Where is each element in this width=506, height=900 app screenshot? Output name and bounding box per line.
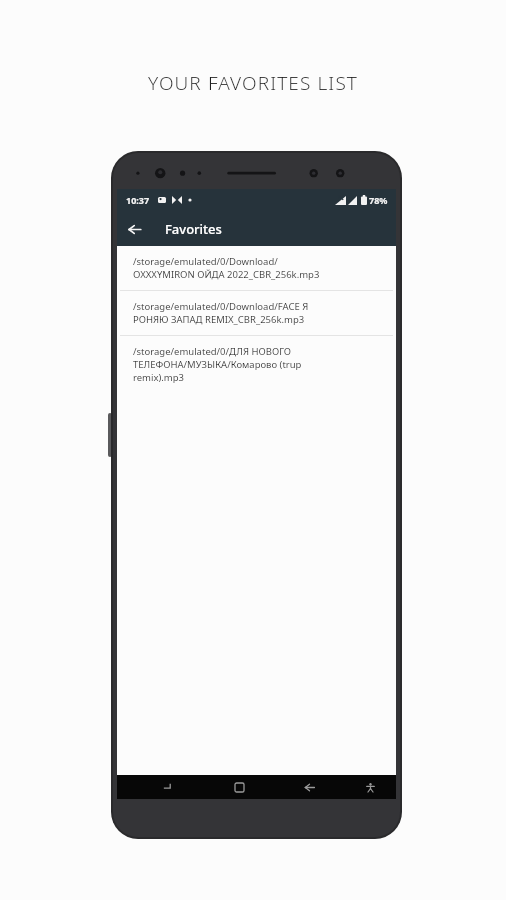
staticText: /storage/emulated/0/ДЛЯ НОВОГО ТЕЛЕФОНА/… — [133, 345, 302, 384]
button[interactable]: /storage/emulated/0/Download/ OXXXYMIRON… — [117, 246, 396, 291]
button[interactable]: Accessibility — [360, 777, 380, 797]
staticText: /storage/emulated/0/Download/FACE Я РОНЯ… — [133, 300, 309, 326]
button[interactable]: Recents — [157, 775, 181, 799]
staticText: YOUR FAVORITES LIST — [148, 70, 359, 96]
button[interactable]: Back — [297, 775, 321, 799]
staticText: /storage/emulated/0/Download/ OXXXYMIRON… — [133, 255, 320, 281]
staticText: 78% — [369, 194, 388, 206]
button[interactable]: Back — [117, 212, 151, 246]
staticText: Favorites — [165, 220, 222, 238]
button[interactable]: /storage/emulated/0/Download/FACE Я РОНЯ… — [117, 291, 396, 336]
button[interactable]: /storage/emulated/0/ДЛЯ НОВОГО ТЕЛЕФОНА/… — [117, 336, 396, 393]
button[interactable]: Home — [227, 775, 251, 799]
staticText: 10:37 — [126, 194, 150, 206]
